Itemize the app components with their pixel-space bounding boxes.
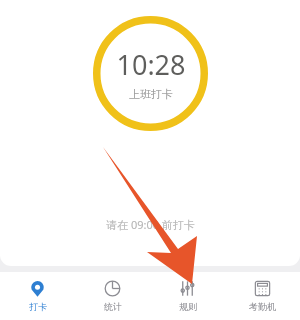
staticText: 考勤机 [249,301,276,312]
button[interactable]: 规则 [150,272,225,320]
button[interactable]: 考勤机 [225,272,300,320]
staticText: 统计 [104,301,122,312]
staticText: 请在 09:00 前打卡 [106,217,195,232]
staticText: 10:28 [116,46,186,83]
button[interactable]: 上班打卡 10:28 [93,16,208,131]
staticText: 打卡 [29,301,47,312]
button[interactable]: 打卡 [0,272,75,320]
staticText: 上班打卡 [129,87,173,101]
staticText: 规则 [179,301,197,312]
button[interactable]: 统计 [75,272,150,320]
